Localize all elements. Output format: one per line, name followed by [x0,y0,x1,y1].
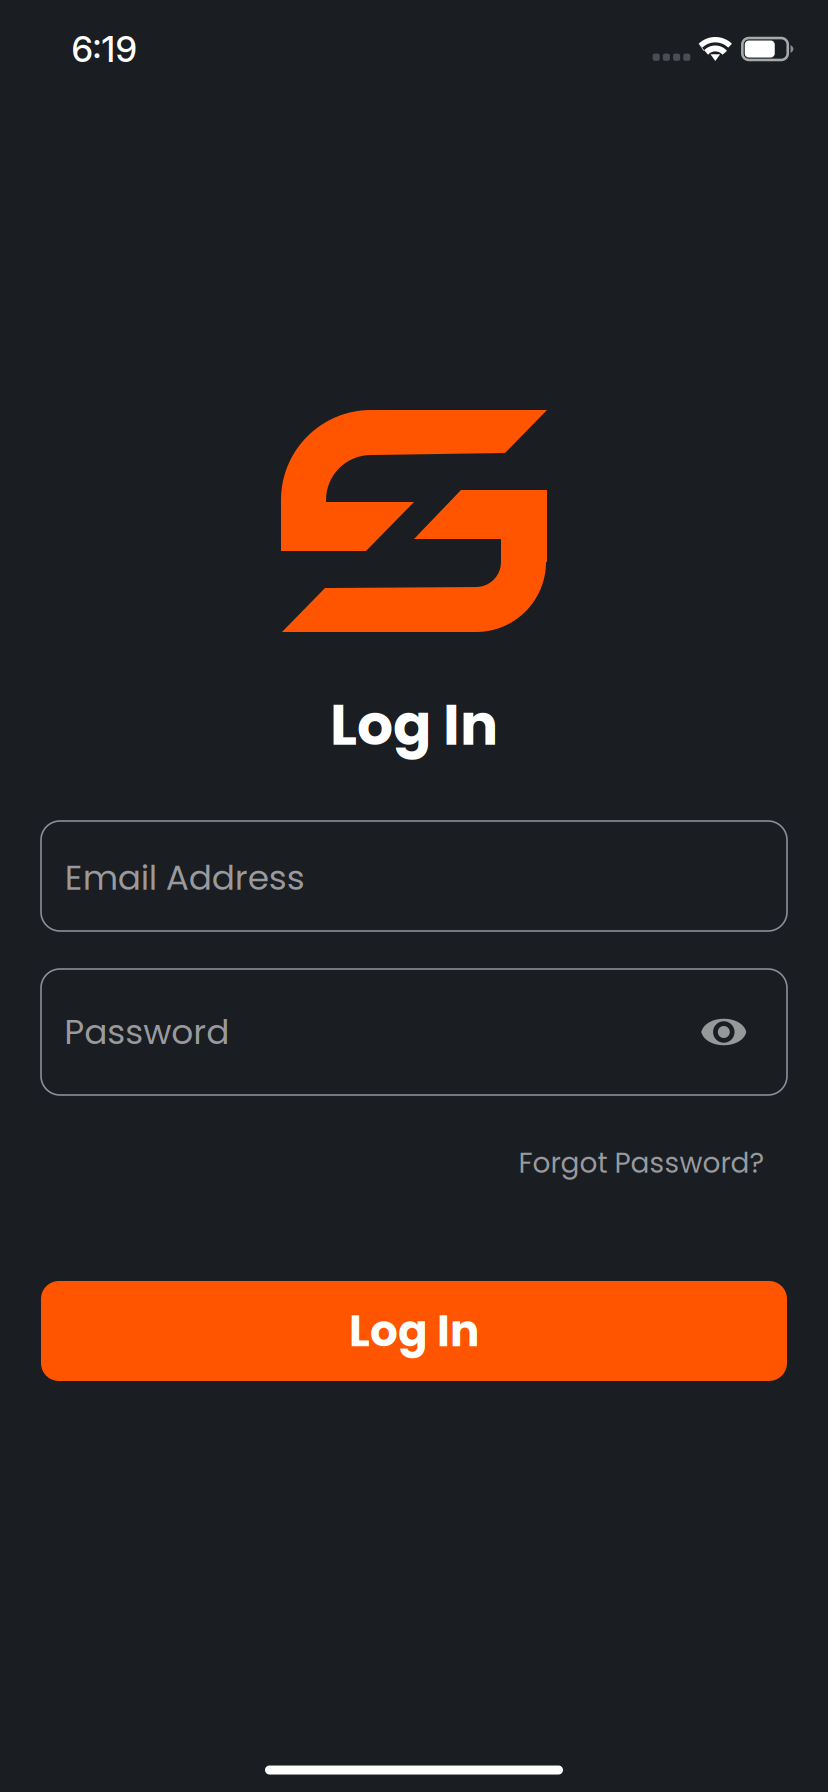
staticText: Password [64,1008,229,1056]
staticText: Log In [349,1300,479,1362]
staticText: Email Address [65,854,305,902]
staticText: Log In [330,685,498,765]
staticText: 6:19 [71,27,136,70]
button[interactable]: Forgot Password? [518,1131,764,1195]
staticText: Forgot Password? [518,1143,764,1183]
button[interactable]: Show password [687,995,761,1069]
button[interactable]: Log In [41,1281,787,1381]
